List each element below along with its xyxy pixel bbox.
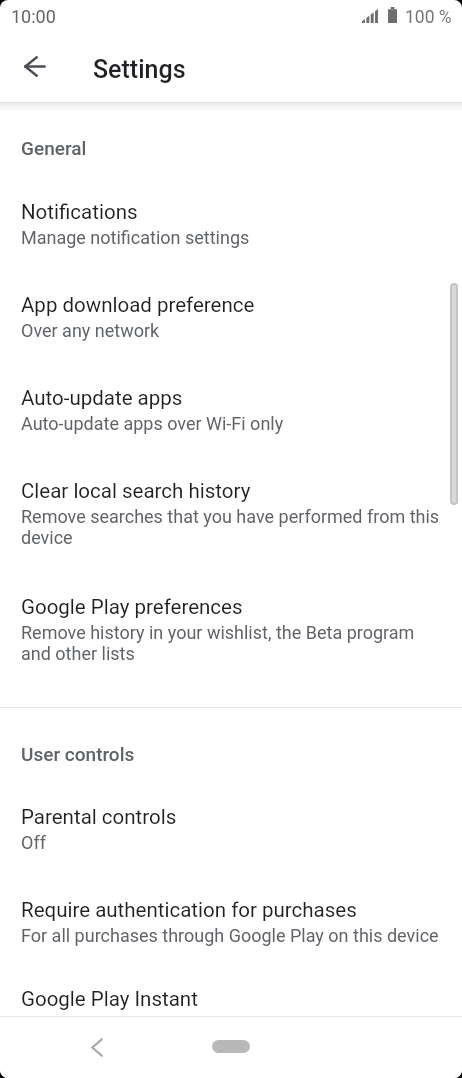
button[interactable]: Clear local search history <box>0 479 462 594</box>
staticText: General <box>21 137 87 159</box>
staticText: App download preference <box>21 293 255 317</box>
button[interactable]: Google Play Instant <box>0 987 462 1015</box>
staticText: Remove searches that you have performed … <box>21 506 442 548</box>
button[interactable]: Back <box>79 1029 115 1065</box>
button[interactable]: Notifications <box>0 200 462 293</box>
button[interactable]: Require authentication for purchases <box>0 898 462 991</box>
staticText: User controls <box>21 743 135 765</box>
staticText: Auto-update apps over Wi-Fi only <box>21 413 284 434</box>
staticText: Clear local search history <box>21 479 251 503</box>
button[interactable]: Google Play preferences <box>0 595 462 707</box>
staticText: Over any network <box>21 320 160 341</box>
staticText: Off <box>21 832 46 853</box>
button[interactable]: Parental controls <box>0 805 462 898</box>
staticText: Google Play Instant <box>21 987 198 1011</box>
button[interactable]: Home <box>212 1040 250 1053</box>
staticText: Manage notification settings <box>21 227 250 248</box>
staticText: Google Play preferences <box>21 595 243 619</box>
staticText: 10:00 <box>11 6 56 27</box>
button[interactable]: Back <box>13 44 57 88</box>
staticText: Remove history in your wishlist, the Bet… <box>21 622 442 664</box>
staticText: Parental controls <box>21 805 177 829</box>
staticText: Settings <box>93 55 186 84</box>
button[interactable]: App download preference <box>0 293 462 386</box>
staticText: Auto-update apps <box>21 386 183 410</box>
staticText: Require authentication for purchases <box>21 898 357 922</box>
button[interactable]: Auto-update apps <box>0 386 462 479</box>
staticText: 100 % <box>405 7 452 28</box>
staticText: Notifications <box>21 200 138 224</box>
staticText: For all purchases through Google Play on… <box>21 925 439 946</box>
